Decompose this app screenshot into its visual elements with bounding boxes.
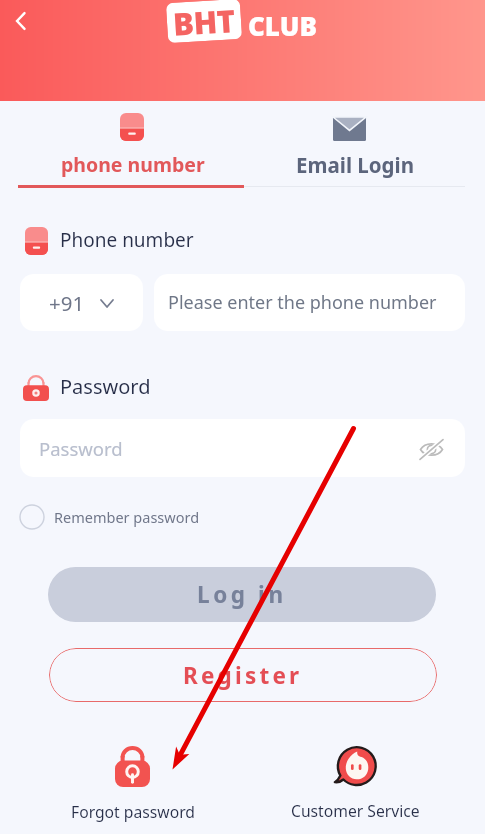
button[interactable]: Register <box>49 648 437 702</box>
button[interactable]: Email Login <box>243 101 485 189</box>
staticText: Phone number <box>60 227 194 253</box>
button[interactable]: phone number <box>0 101 242 189</box>
button[interactable]: Show password <box>414 432 448 466</box>
staticText: Password <box>60 373 151 400</box>
staticText: Register <box>183 660 303 691</box>
staticText: +91 <box>49 289 85 317</box>
button[interactable]: Forgot password <box>66 746 199 822</box>
button[interactable]: +91 <box>20 274 143 331</box>
staticText: Forgot password <box>71 801 195 822</box>
staticText: BHT <box>172 0 236 43</box>
staticText: Password <box>39 436 123 461</box>
button[interactable]: Customer Service <box>285 745 426 821</box>
button[interactable]: Back <box>1 1 41 41</box>
staticText: Email Login <box>296 151 414 179</box>
staticText: Remember password <box>54 507 200 527</box>
staticText: phone number <box>61 151 205 178</box>
button[interactable]: Please enter the phone number <box>154 274 465 331</box>
staticText: Log in <box>197 579 287 610</box>
staticText: CLUB <box>248 8 317 43</box>
staticText: Please enter the phone number <box>168 290 437 315</box>
staticText: Customer Service <box>291 800 420 821</box>
button[interactable]: Log in <box>48 567 436 622</box>
button[interactable]: Password <box>20 419 465 477</box>
button[interactable]: Remember password <box>19 504 200 530</box>
